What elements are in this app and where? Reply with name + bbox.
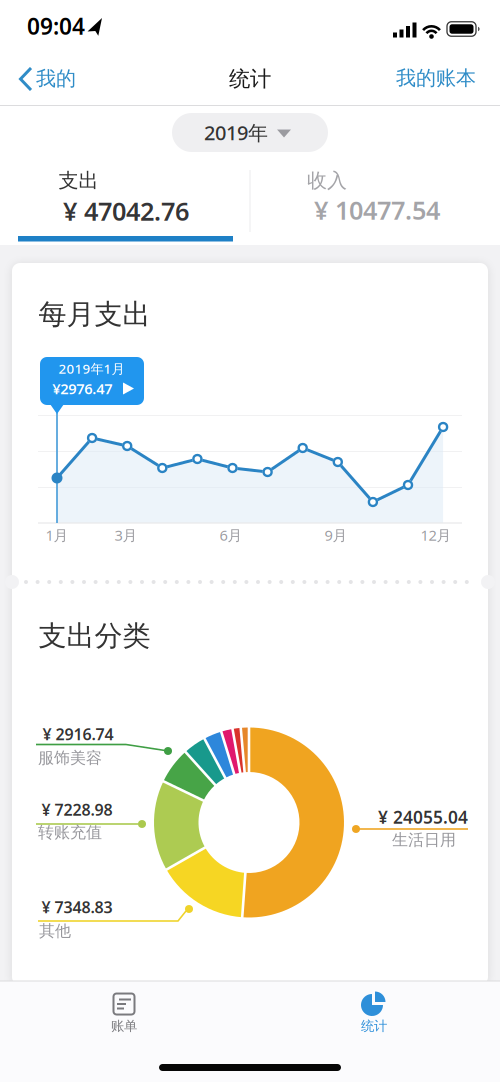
button[interactable]: 2019年 bbox=[172, 113, 328, 152]
staticText: 1月 bbox=[45, 525, 68, 545]
staticText: 服饰美容 bbox=[38, 748, 102, 768]
staticText: ¥ 10477.54 bbox=[314, 193, 440, 227]
staticText: ¥ 2916.74 bbox=[42, 723, 113, 745]
staticText: 转账充值 bbox=[38, 823, 102, 842]
button[interactable]: 支出 bbox=[0, 160, 250, 250]
button[interactable]: 收入 bbox=[250, 160, 500, 250]
staticText: 9月 bbox=[324, 525, 347, 545]
staticText: 每月支出 bbox=[38, 297, 150, 332]
staticText: 2019年1月 bbox=[58, 360, 124, 377]
button[interactable]: 统计 bbox=[314, 983, 434, 1039]
staticText: ¥ 7348.83 bbox=[41, 896, 112, 918]
staticText: ¥ 7228.98 bbox=[41, 799, 112, 820]
staticText: 6月 bbox=[219, 525, 242, 545]
staticText: ¥ 47042.76 bbox=[63, 194, 189, 228]
staticText: 统计 bbox=[361, 1018, 387, 1034]
button[interactable]: 我的 bbox=[0, 59, 90, 99]
staticText: 2019年 bbox=[204, 119, 268, 146]
staticText: 我的 bbox=[36, 66, 76, 91]
staticText: 统计 bbox=[229, 66, 271, 92]
staticText: 支出 bbox=[58, 168, 98, 193]
button[interactable]: 账单 bbox=[64, 983, 184, 1039]
staticText: 支出分类 bbox=[38, 619, 150, 653]
staticText: 收入 bbox=[307, 168, 347, 193]
staticText: 3月 bbox=[114, 525, 137, 545]
staticText: ¥ 24055.04 bbox=[378, 805, 468, 828]
button[interactable]: 2019年1月 bbox=[40, 357, 144, 415]
staticText: ¥2976.47 bbox=[52, 379, 112, 398]
button[interactable]: 我的账本 bbox=[391, 58, 481, 98]
staticText: 账单 bbox=[111, 1018, 137, 1034]
staticText: 其他 bbox=[39, 921, 71, 941]
staticText: 09:04 bbox=[27, 11, 85, 41]
staticText: 生活日用 bbox=[392, 830, 456, 850]
staticText: 12月 bbox=[420, 525, 451, 545]
staticText: 我的账本 bbox=[396, 66, 476, 90]
